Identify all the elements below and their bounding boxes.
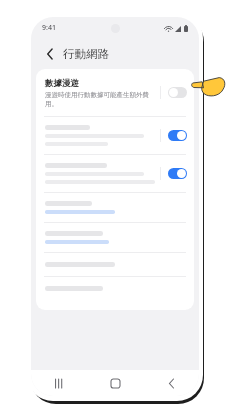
button[interactable]: Home: [87, 370, 143, 396]
staticText: 數據漫遊: [45, 78, 79, 89]
button[interactable]: Back: [143, 370, 199, 396]
button[interactable]: Toggle off: [168, 87, 187, 98]
staticText: 行動網路: [63, 47, 109, 61]
button[interactable]: [36, 277, 194, 300]
button[interactable]: Back: [41, 45, 59, 63]
button[interactable]: Toggle on: [36, 117, 194, 154]
button[interactable]: [36, 223, 194, 252]
staticText: 9:41: [42, 23, 56, 33]
button[interactable]: Toggle on: [168, 168, 187, 179]
button[interactable]: Toggle on: [36, 155, 194, 192]
other: Tap here: [192, 71, 226, 101]
staticText: 漫遊時使用行動數據可能產生額外費用。: [45, 91, 155, 107]
button[interactable]: [36, 193, 194, 222]
button[interactable]: 數據漫遊: [36, 69, 194, 116]
button[interactable]: [36, 253, 194, 276]
button[interactable]: Toggle on: [168, 130, 187, 141]
button[interactable]: Recents: [31, 370, 87, 396]
